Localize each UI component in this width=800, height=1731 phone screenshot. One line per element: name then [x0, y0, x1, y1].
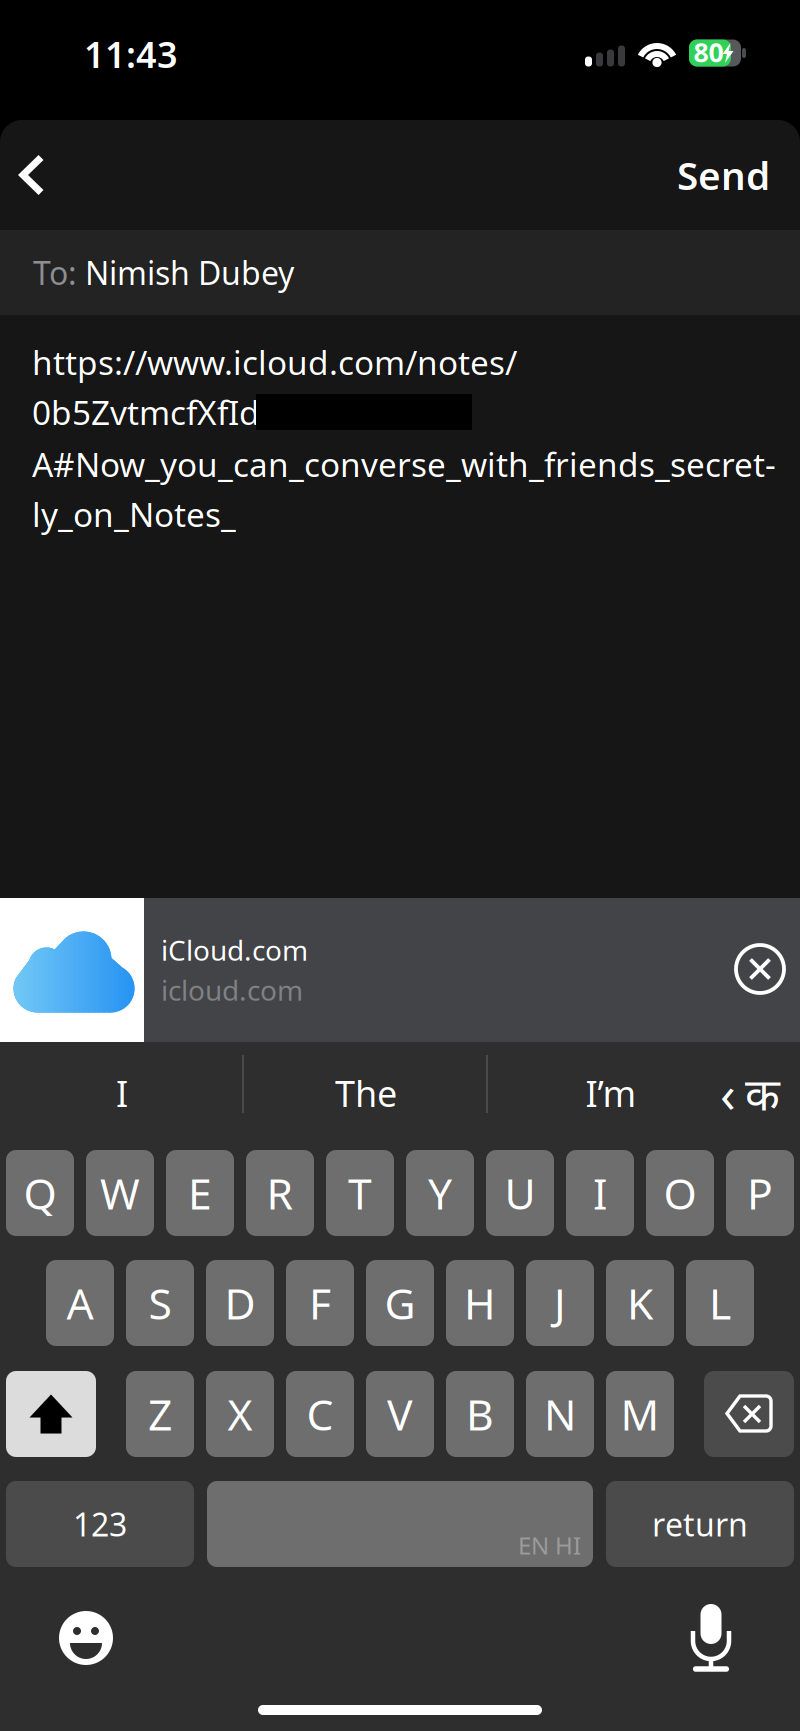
button[interactable]: The	[247, 1047, 485, 1139]
staticText: U	[504, 1165, 535, 1221]
staticText: 0b5ZvtmcfXfId	[32, 390, 260, 434]
staticText: ly_on_Notes_	[32, 492, 236, 536]
button[interactable]: F	[286, 1260, 354, 1346]
staticText: C	[306, 1386, 333, 1442]
staticText: E	[188, 1165, 212, 1221]
staticText: B	[466, 1386, 494, 1442]
staticText: Z	[148, 1386, 172, 1442]
button[interactable]: W	[86, 1150, 154, 1236]
button[interactable]: H	[446, 1260, 514, 1346]
staticText: K	[627, 1275, 653, 1331]
button[interactable]: X	[206, 1371, 274, 1457]
button[interactable]: Send	[600, 121, 770, 229]
button[interactable]: R	[246, 1150, 314, 1236]
button[interactable]: T	[326, 1150, 394, 1236]
staticText: iCloud.com	[161, 931, 308, 969]
staticText: S	[148, 1275, 171, 1331]
button[interactable]: S	[126, 1260, 194, 1346]
staticText: A#Now_you_can_converse_with_friends_secr…	[32, 442, 776, 486]
staticText: W	[100, 1165, 140, 1221]
button[interactable]: J	[526, 1260, 594, 1346]
button[interactable]: Q	[6, 1150, 74, 1236]
staticText: icloud.com	[161, 971, 303, 1009]
staticText: P	[747, 1165, 773, 1221]
button[interactable]: return	[606, 1481, 794, 1567]
button[interactable]: P	[726, 1150, 794, 1236]
staticText: X	[227, 1386, 252, 1442]
staticText: क	[745, 1063, 780, 1123]
button[interactable]: O	[646, 1150, 714, 1236]
staticText: To:	[33, 251, 77, 294]
staticText: R	[266, 1165, 293, 1221]
button[interactable]: Emoji	[44, 1596, 128, 1680]
button[interactable]: C	[286, 1371, 354, 1457]
button[interactable]: A	[46, 1260, 114, 1346]
button[interactable]: N	[526, 1371, 594, 1457]
button[interactable]: I’m	[492, 1047, 730, 1139]
button[interactable]: Y	[406, 1150, 474, 1236]
staticText: I	[116, 1069, 128, 1117]
staticText: I	[593, 1165, 607, 1221]
button[interactable]: Dictate	[669, 1596, 753, 1680]
button[interactable]: Back	[0, 121, 69, 229]
staticText: The	[335, 1069, 397, 1117]
staticText: 80	[693, 34, 723, 70]
staticText: Nimish Dubey	[85, 251, 294, 294]
staticText: L	[709, 1275, 731, 1331]
staticText: G	[384, 1275, 415, 1331]
staticText: return	[652, 1503, 748, 1545]
button[interactable]: V	[366, 1371, 434, 1457]
button[interactable]: Shift	[6, 1371, 96, 1457]
staticText: I’m	[585, 1069, 636, 1117]
staticText: D	[224, 1275, 255, 1331]
button[interactable]: D	[206, 1260, 274, 1346]
staticText: H	[464, 1275, 496, 1331]
button[interactable]: B	[446, 1371, 514, 1457]
button[interactable]: Remove link preview	[712, 921, 800, 1017]
staticText: EN HI	[518, 1529, 581, 1561]
staticText: V	[387, 1386, 413, 1442]
staticText: N	[544, 1386, 576, 1442]
staticText: F	[309, 1275, 331, 1331]
button[interactable]: L	[686, 1260, 754, 1346]
button[interactable]: K	[606, 1260, 674, 1346]
staticText: J	[554, 1275, 566, 1331]
button[interactable]: I	[3, 1047, 241, 1139]
staticText: 123	[73, 1503, 127, 1545]
staticText: ‹	[720, 1059, 736, 1127]
staticText: O	[663, 1165, 696, 1221]
button[interactable]: Z	[126, 1371, 194, 1457]
button[interactable]: U	[486, 1150, 554, 1236]
staticText: Y	[428, 1165, 452, 1221]
button[interactable]: I	[566, 1150, 634, 1236]
staticText: Send	[677, 149, 770, 201]
button[interactable]: G	[366, 1260, 434, 1346]
staticText: https://www.icloud.com/notes/	[32, 340, 517, 384]
button[interactable]: M	[606, 1371, 674, 1457]
button[interactable]: space	[207, 1481, 593, 1567]
staticText: A	[66, 1275, 93, 1331]
button[interactable]: E	[166, 1150, 234, 1236]
button[interactable]: Delete	[704, 1371, 794, 1457]
staticText: M	[620, 1386, 659, 1442]
staticText: 11:43	[84, 30, 178, 78]
button[interactable]: 123	[6, 1481, 194, 1567]
staticText: T	[348, 1165, 372, 1221]
button[interactable]: Switch keyboard language	[695, 1047, 800, 1139]
staticText: Q	[23, 1165, 56, 1221]
